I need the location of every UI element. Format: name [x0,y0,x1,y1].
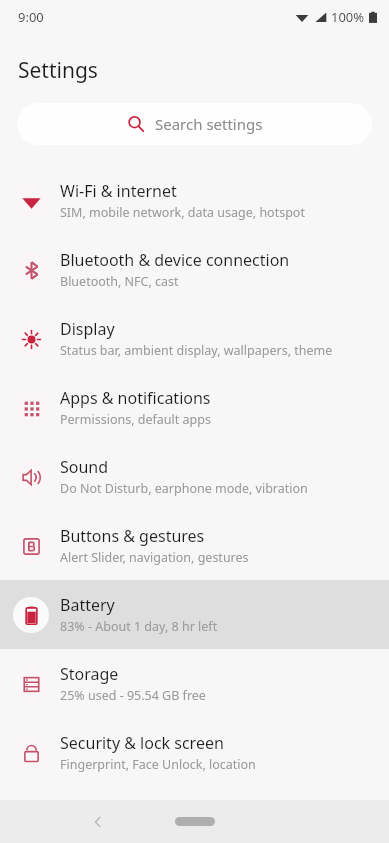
button[interactable]: Security & lock screen [0,718,389,787]
staticText: Security & lock screen [60,732,224,754]
button[interactable]: Search settings [17,103,372,145]
staticText: Battery [60,594,115,616]
button[interactable]: Sound [0,442,389,511]
staticText: Display [60,318,115,340]
staticText: Bluetooth, NFC, cast [60,273,179,290]
staticText: Search settings [155,114,263,134]
button[interactable]: Bluetooth & device connection [0,235,389,304]
staticText: 100% [331,8,365,26]
staticText: Buttons & gestures [60,525,205,547]
staticText: Alert Slider, navigation, gestures [60,549,249,566]
staticText: 9:00 [18,8,44,26]
button[interactable]: Storage [0,649,389,718]
staticText: Storage [60,663,119,685]
button[interactable]: Display [0,304,389,373]
staticText: Status bar, ambient display, wallpapers,… [60,342,333,359]
staticText: Apps & notifications [60,387,211,409]
staticText: SIM, mobile network, data usage, hotspot [60,204,305,221]
button[interactable]: Battery [0,580,389,649]
staticText: Settings [18,56,98,85]
staticText: Wi-Fi & internet [60,180,177,202]
button[interactable]: Apps & notifications [0,373,389,442]
staticText: 83% - About 1 day, 8 hr left [60,618,218,635]
staticText: 25% used - 95.54 GB free [60,687,206,704]
staticText: Permissions, default apps [60,411,211,428]
staticText: Fingerprint, Face Unlock, location [60,756,256,773]
staticText: Bluetooth & device connection [60,249,290,271]
button[interactable]: Wi-Fi & internet [0,166,389,235]
staticText: Sound [60,456,109,478]
button[interactable]: Home [175,817,215,826]
button[interactable]: Buttons & gestures [0,511,389,580]
button[interactable]: Back [83,807,113,837]
staticText: Do Not Disturb, earphone mode, vibration [60,480,308,497]
